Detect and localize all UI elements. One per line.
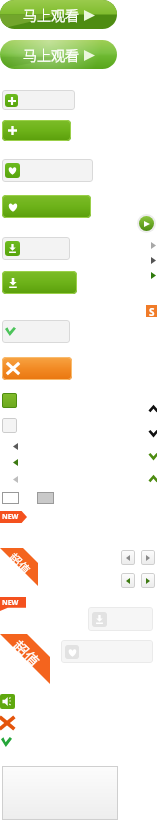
button[interactable]: Next [151, 272, 156, 279]
button[interactable]: Disabled [88, 607, 153, 631]
button[interactable]: New [0, 597, 26, 611]
staticText: 马上观看 [23, 45, 79, 65]
staticText: 马上观看 [23, 5, 79, 25]
staticText: 超值 [8, 635, 45, 673]
button[interactable]: Collapse [149, 475, 157, 483]
button[interactable]: Great value [0, 634, 50, 684]
button[interactable]: Expand [149, 452, 157, 460]
button[interactable]: Sina Weibo [146, 305, 157, 317]
button[interactable]: Previous [121, 550, 135, 565]
button[interactable]: Next [151, 242, 156, 249]
button[interactable]: Collapse [149, 405, 157, 413]
button[interactable]: Action [2, 271, 77, 294]
button[interactable]: Next [151, 257, 156, 264]
button[interactable]: 马上观看 [0, 40, 117, 69]
button[interactable]: Previous [13, 443, 18, 450]
button[interactable]: Field [2, 320, 70, 343]
button[interactable]: Field [2, 90, 75, 110]
button[interactable]: Field [2, 237, 70, 260]
button[interactable]: Next [141, 550, 155, 565]
staticText: NEW [2, 598, 19, 608]
button[interactable]: Previous [13, 476, 18, 483]
button[interactable]: Sound [0, 694, 15, 709]
button[interactable]: Action [2, 120, 71, 141]
button[interactable]: Button pressed [37, 492, 54, 504]
staticText: NEW [2, 512, 19, 522]
button[interactable]: Disabled [61, 640, 153, 663]
button[interactable]: Action [2, 195, 91, 218]
button[interactable]: Card [2, 766, 118, 820]
button[interactable]: Next [141, 573, 155, 588]
button[interactable]: Checked [2, 393, 17, 408]
button[interactable]: Previous [121, 573, 135, 588]
button[interactable]: 马上观看 [0, 0, 117, 29]
button[interactable]: New [0, 511, 27, 523]
button[interactable]: Expand [149, 429, 157, 437]
button[interactable]: Button [2, 492, 19, 504]
button[interactable]: Previous [13, 459, 18, 466]
button[interactable]: Close [2, 357, 72, 380]
button[interactable]: Great value [0, 548, 38, 586]
button[interactable]: Field [2, 159, 93, 182]
staticText: 超值 [6, 549, 35, 578]
button[interactable]: Play [139, 216, 154, 231]
button[interactable]: Unchecked [2, 418, 17, 433]
staticText: S [149, 305, 155, 317]
